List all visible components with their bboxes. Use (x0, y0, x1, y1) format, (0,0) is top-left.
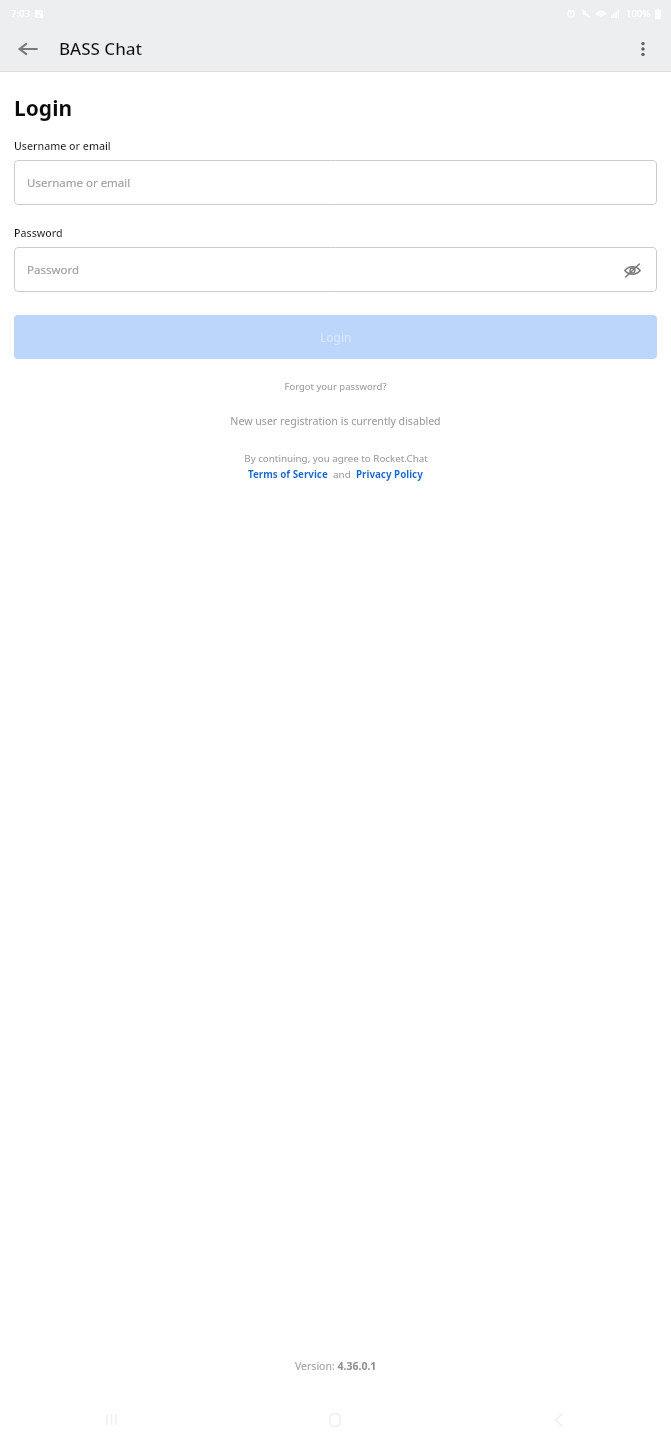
staticText: Terms of Service (248, 468, 328, 481)
staticText: Privacy Policy (356, 468, 423, 481)
staticText: Password (27, 262, 80, 278)
staticText: Login (14, 94, 73, 123)
staticText: BASS Chat (59, 37, 143, 60)
staticText: By continuing, you agree to Rocket.Chat (244, 452, 428, 465)
button[interactable]: Back (8, 29, 48, 69)
staticText: 7:03 (11, 7, 30, 20)
button[interactable]: More options (623, 29, 663, 69)
staticText: New user registration is currently disab… (230, 414, 441, 428)
button[interactable]: Username or email (14, 160, 657, 205)
button[interactable]: Forgot your password? (0, 380, 671, 393)
staticText: Username or email (14, 139, 111, 153)
button[interactable]: Show password (617, 255, 647, 285)
button[interactable]: Privacy Policy (356, 468, 423, 481)
button[interactable]: New user registration is currently disab… (0, 414, 671, 428)
button[interactable]: Terms of Service (248, 468, 328, 481)
staticText: and (328, 468, 356, 481)
staticText: Version: 4.36.0.1 (295, 1359, 377, 1373)
staticText: Username or email (27, 175, 131, 191)
staticText: Forgot your password? (284, 380, 387, 393)
staticText: 100% (626, 7, 651, 20)
staticText: Password (14, 226, 63, 240)
button[interactable]: Password (14, 247, 657, 292)
staticText: Login (320, 329, 352, 345)
